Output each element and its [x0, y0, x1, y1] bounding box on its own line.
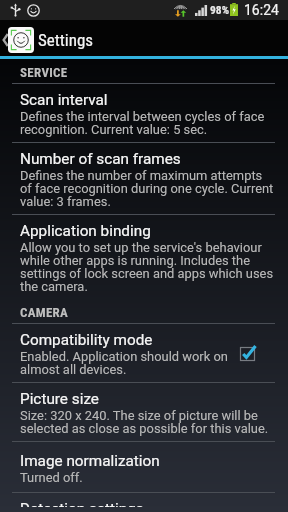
staticText: 98%: [210, 3, 229, 16]
staticText: Settings: [38, 30, 94, 50]
staticText: Compatibility mode: [20, 331, 153, 349]
staticText: Defines the number of maximum attempts o…: [20, 168, 276, 209]
staticText: CAMERA: [20, 305, 69, 320]
staticText: Turned off.: [20, 470, 83, 485]
button[interactable]: Picture size: [0, 383, 288, 442]
staticText: Image normalization: [20, 452, 160, 470]
staticText: Picture size: [20, 390, 99, 408]
button[interactable]: Scan interval: [0, 84, 288, 143]
staticText: 16:24: [244, 2, 279, 18]
staticText: SERVICE: [20, 65, 68, 80]
button[interactable]: Application binding: [0, 215, 288, 299]
staticText: Application binding: [20, 222, 151, 240]
button[interactable]: Number of scan frames: [0, 143, 288, 215]
staticText: Size: 320 x 240. The size of picture wil…: [20, 408, 276, 436]
staticText: Defines the interval between cycles of f…: [20, 109, 276, 137]
staticText: Number of scan frames: [20, 150, 181, 168]
button[interactable]: Navigate up: [0, 23, 34, 56]
staticText: Allow you to set up the service's behavi…: [20, 240, 276, 294]
staticText: Scan interval: [20, 91, 108, 109]
button[interactable]: Compatibility mode: [0, 324, 288, 383]
staticText: Detection settings: [20, 500, 144, 507]
button[interactable]: Detection settings: [0, 493, 288, 512]
button[interactable]: Image normalization: [0, 442, 288, 493]
staticText: Enabled. Application should work on almo…: [20, 349, 234, 377]
